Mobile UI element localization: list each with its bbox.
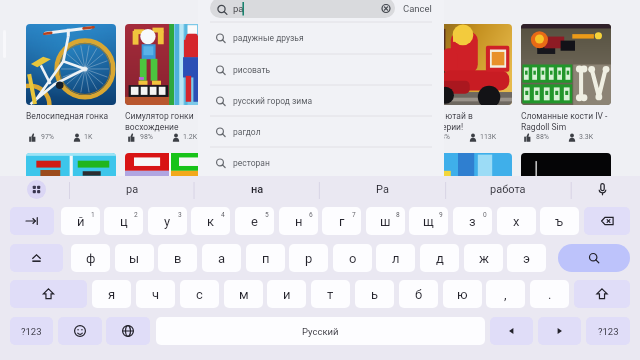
- button[interactable]: Backspace: [584, 207, 630, 235]
- staticText: Cancel: [403, 3, 432, 14]
- button[interactable]: Search: [558, 244, 630, 272]
- staticText: 89%: [536, 262, 549, 270]
- staticText: ю: [457, 287, 468, 302]
- staticText: Игра года: [224, 240, 314, 250]
- button[interactable]: Shift: [10, 280, 87, 308]
- button[interactable]: з: [453, 207, 492, 235]
- button[interactable]: Caps lock: [10, 244, 63, 272]
- button[interactable]: Voice input: [592, 179, 613, 200]
- button[interactable]: рагдол: [198, 116, 444, 147]
- staticText: Велосипедная гонка: [26, 111, 116, 121]
- button[interactable]: .: [530, 280, 569, 308]
- button[interactable]: к: [191, 207, 230, 235]
- button[interactable]: ь: [355, 280, 394, 308]
- button[interactable]: ?123: [10, 317, 53, 345]
- staticText: ресторан: [233, 158, 270, 168]
- staticText: ъ: [555, 214, 564, 229]
- button[interactable]: Clear search: [377, 0, 395, 18]
- button[interactable]: л: [376, 244, 415, 272]
- button[interactable]: Гонки по холмам 2: [224, 24, 314, 145]
- button[interactable]: в: [158, 244, 197, 272]
- button[interactable]: б: [399, 280, 438, 308]
- button[interactable]: ч: [136, 280, 175, 308]
- button[interactable]: ф: [71, 244, 110, 272]
- button[interactable]: Город героев: [422, 153, 512, 274]
- staticText: 9: [439, 211, 443, 219]
- button[interactable]: ра: [87, 178, 177, 200]
- button[interactable]: й: [61, 207, 100, 235]
- button[interactable]: Велосипедная гонка: [26, 24, 116, 145]
- button[interactable]: Симулятор гонки восхождение: [125, 24, 215, 145]
- staticText: ч: [152, 287, 160, 302]
- button[interactable]: ж: [464, 244, 503, 272]
- button[interactable]: Keyboard settings: [27, 180, 46, 199]
- button[interactable]: Рул и ютай в пиццерии!: [422, 24, 512, 145]
- button[interactable]: ,: [486, 280, 525, 308]
- staticText: на: [251, 183, 264, 196]
- button[interactable]: Change language: [106, 317, 150, 345]
- button[interactable]: рисовать: [198, 54, 444, 85]
- staticText: и: [283, 287, 291, 302]
- button[interactable]: о: [333, 244, 372, 272]
- button[interactable]: х: [497, 207, 536, 235]
- button[interactable]: н: [279, 207, 318, 235]
- button[interactable]: Новая игра: [323, 153, 413, 274]
- button[interactable]: т: [311, 280, 350, 308]
- button[interactable]: я: [92, 280, 131, 308]
- button[interactable]: Cancel: [399, 0, 435, 18]
- button[interactable]: Сломанные кости IV - Ragdoll Sim: [521, 24, 611, 145]
- button[interactable]: на: [212, 178, 302, 200]
- button[interactable]: ш: [366, 207, 405, 235]
- staticText: ж: [479, 251, 489, 266]
- button[interactable]: Shift: [574, 280, 630, 308]
- staticText: Рагдол симулятор: [323, 111, 413, 121]
- button[interactable]: HITMAN 2: [521, 153, 611, 274]
- staticText: п: [262, 251, 270, 266]
- button[interactable]: у: [148, 207, 187, 235]
- button[interactable]: Tab: [10, 207, 54, 235]
- button[interactable]: г: [322, 207, 361, 235]
- button[interactable]: Move cursor right: [538, 317, 581, 345]
- button[interactable]: ы: [115, 244, 154, 272]
- button[interactable]: а: [202, 244, 241, 272]
- button[interactable]: Move cursor left: [490, 317, 533, 345]
- button[interactable]: е: [235, 207, 274, 235]
- staticText: 2: [134, 211, 138, 219]
- button[interactable]: работа: [463, 178, 553, 200]
- button[interactable]: ра: [210, 0, 395, 18]
- staticText: ш: [380, 214, 391, 229]
- staticText: 98%: [140, 133, 153, 141]
- staticText: к: [207, 214, 215, 229]
- staticText: Рул и ютай в пиццерии!: [422, 111, 512, 132]
- button[interactable]: ю: [443, 280, 482, 308]
- button[interactable]: д: [420, 244, 459, 272]
- button[interactable]: с: [180, 280, 219, 308]
- button[interactable]: Уровень 1 или 100: [26, 153, 116, 274]
- button[interactable]: щ: [409, 207, 448, 235]
- staticText: ф: [86, 251, 96, 266]
- button[interactable]: радужные друзья: [198, 22, 444, 53]
- button[interactable]: Нуб и семья: [125, 153, 215, 274]
- staticText: работа: [490, 183, 526, 196]
- button[interactable]: р: [289, 244, 328, 272]
- button[interactable]: э: [507, 244, 546, 272]
- button[interactable]: и: [267, 280, 306, 308]
- button[interactable]: ъ: [540, 207, 579, 235]
- staticText: 4: [221, 211, 225, 219]
- button[interactable]: Русский: [156, 317, 485, 345]
- button[interactable]: Emoji: [58, 317, 102, 345]
- staticText: у: [164, 214, 171, 229]
- button[interactable]: ресторан: [198, 147, 444, 178]
- button[interactable]: Ра: [337, 178, 427, 200]
- button[interactable]: м: [224, 280, 263, 308]
- staticText: ц: [120, 214, 128, 229]
- button[interactable]: Игра года: [224, 153, 314, 274]
- button[interactable]: ц: [104, 207, 143, 235]
- staticText: в: [174, 251, 182, 266]
- staticText: 113K: [480, 133, 497, 141]
- button[interactable]: русский город зима: [198, 85, 444, 116]
- button[interactable]: п: [246, 244, 285, 272]
- button[interactable]: ?123: [586, 317, 630, 345]
